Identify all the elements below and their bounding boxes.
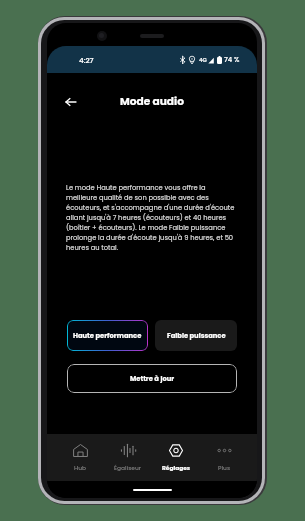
button[interactable]: Haute performance [67,320,148,351]
staticText: Le mode Haute performance vous offre la … [66,183,235,253]
staticText: 74 % [224,55,240,65]
staticText: Faible puissance [167,331,226,340]
staticText: Mode audio [120,94,184,109]
staticText: 4:27 [79,55,94,65]
button[interactable]: Réglages [152,434,200,481]
staticText: Plus [218,464,231,472]
staticText: Égaliseur [114,464,142,472]
button[interactable]: Égaliseur [104,434,152,481]
staticText: Réglages [162,464,191,472]
staticText: Haute performance [73,331,142,340]
button[interactable]: Mettre à jour [67,364,237,393]
staticText: 4G [199,56,207,64]
button[interactable]: Plus [200,434,248,481]
button[interactable]: Back [60,92,80,112]
staticText: Hub [74,464,86,472]
button[interactable]: Faible puissance [155,320,237,351]
button[interactable]: Hub [56,434,104,481]
staticText: Mettre à jour [130,374,175,383]
